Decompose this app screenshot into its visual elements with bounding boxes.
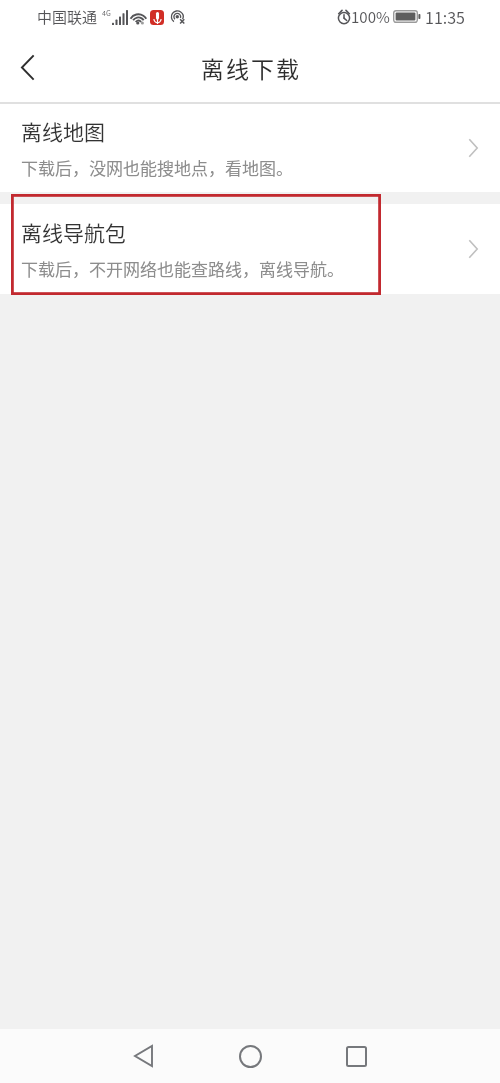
staticText: 下载后，没网也能搜地点，看地图。 [21, 155, 293, 180]
staticText: 离线下载 [200, 51, 300, 84]
staticText: 4G [102, 8, 111, 18]
staticText: 中国联通 [37, 6, 98, 28]
staticText: 100% [351, 6, 390, 28]
staticText: 离线导航包 [21, 217, 126, 247]
staticText: 下载后，不开网络也能查路线，离线导航。 [21, 256, 344, 281]
staticText: 离线地图 [21, 116, 105, 146]
button[interactable]: Back [0, 33, 56, 102]
button[interactable]: System back [115, 1029, 171, 1083]
staticText: 11:35 [425, 5, 465, 28]
button[interactable]: Home [222, 1029, 278, 1083]
button[interactable]: Recent apps [328, 1029, 384, 1083]
button[interactable]: 离线导航包 [0, 204, 500, 294]
button[interactable]: 离线地图 [0, 104, 500, 192]
